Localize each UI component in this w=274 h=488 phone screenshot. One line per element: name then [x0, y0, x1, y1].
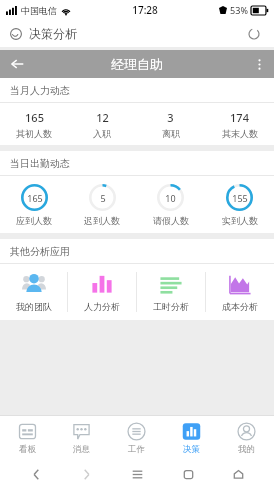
button[interactable]: Back — [0, 50, 34, 78]
button[interactable]: Forward — [71, 460, 101, 488]
staticText: 当日出勤动态 — [10, 157, 70, 170]
button[interactable]: 174 — [205, 103, 274, 145]
staticText: 其末人数 — [222, 128, 258, 139]
button[interactable]: Refresh — [244, 24, 264, 44]
staticText: 迟到人数 — [84, 215, 120, 226]
staticText: 我的团队 — [16, 301, 52, 312]
button[interactable]: 工时分析 — [137, 264, 205, 320]
button[interactable]: More options — [244, 50, 274, 78]
staticText: 实到人数 — [222, 215, 258, 226]
staticText: 12 — [96, 110, 109, 125]
button[interactable]: 155 — [205, 176, 274, 233]
staticText: 中国电信 — [21, 5, 57, 16]
staticText: 看板 — [19, 444, 36, 455]
button[interactable]: 10 — [136, 176, 205, 233]
button[interactable]: 165 — [0, 176, 68, 233]
staticText: 请假人数 — [153, 215, 189, 226]
button[interactable]: Menu — [122, 460, 152, 488]
staticText: 工作 — [128, 444, 145, 455]
staticText: 155 — [232, 192, 248, 204]
staticText: 我的 — [238, 444, 255, 455]
button[interactable]: 消息 — [54, 416, 109, 460]
staticText: 10 — [165, 192, 176, 204]
staticText: 离职 — [162, 128, 180, 139]
staticText: 当月人力动态 — [10, 84, 70, 97]
staticText: 入职 — [93, 128, 111, 139]
staticText: 174 — [230, 110, 249, 125]
staticText: 工时分析 — [153, 301, 189, 312]
button[interactable]: 工作 — [109, 416, 164, 460]
button[interactable]: 我的 — [219, 416, 274, 460]
button[interactable]: 5 — [68, 176, 136, 233]
staticText: 经理自助 — [111, 56, 163, 72]
button[interactable]: 165 — [0, 103, 68, 145]
staticText: 其他分析应用 — [10, 245, 70, 258]
button[interactable]: 成本分析 — [206, 264, 274, 320]
button[interactable]: 看板 — [0, 416, 54, 460]
staticText: 3 — [167, 110, 174, 125]
staticText: 人力分析 — [84, 301, 120, 312]
staticText: 165 — [25, 110, 44, 125]
button[interactable]: Recents — [173, 460, 203, 488]
staticText: 其初人数 — [16, 128, 52, 139]
staticText: 决策分析 — [29, 26, 77, 41]
button[interactable]: 人力分析 — [68, 264, 136, 320]
staticText: 5 — [100, 192, 106, 204]
staticText: 应到人数 — [16, 215, 52, 226]
staticText: 53% — [230, 4, 248, 16]
button[interactable]: 3 — [136, 103, 205, 145]
button[interactable]: Home — [223, 460, 253, 488]
staticText: 165 — [27, 192, 43, 204]
staticText: 消息 — [73, 444, 90, 455]
button[interactable]: Back — [21, 460, 51, 488]
staticText: 决策 — [183, 444, 200, 455]
button[interactable]: 决策 — [164, 416, 219, 460]
staticText: 成本分析 — [222, 301, 258, 312]
button[interactable]: 我的团队 — [0, 264, 67, 320]
staticText: 17:28 — [132, 3, 158, 17]
button[interactable]: 12 — [68, 103, 136, 145]
